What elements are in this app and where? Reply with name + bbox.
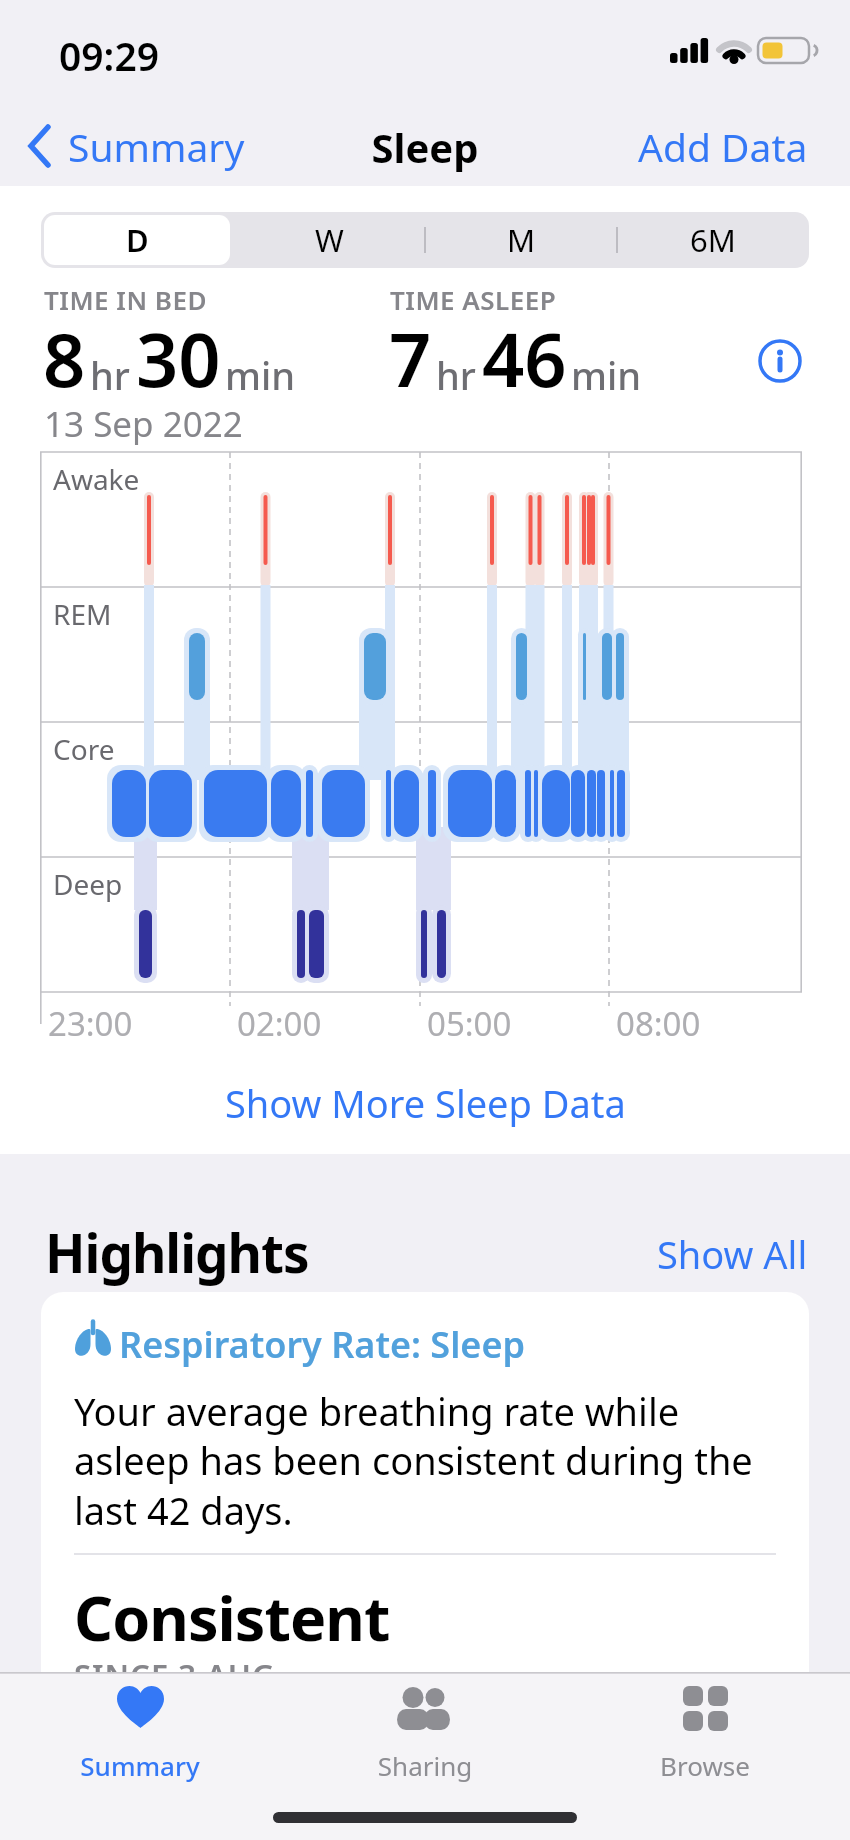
staticText: min <box>225 349 296 401</box>
staticText: 30 <box>136 308 221 409</box>
button[interactable]: Browse <box>625 1678 785 1788</box>
staticText: Sharing <box>345 1748 505 1783</box>
button[interactable]: 6M <box>617 212 809 268</box>
staticText: Summary <box>68 120 245 173</box>
button[interactable]: D <box>41 212 233 268</box>
staticText: hr <box>90 349 130 401</box>
staticText: Show More Sleep Data <box>225 1077 626 1129</box>
staticText: hr <box>436 349 476 401</box>
button[interactable]: M <box>425 212 617 268</box>
staticText: Deep <box>53 865 123 903</box>
staticText: 7 <box>389 308 432 409</box>
staticText: Summary <box>60 1748 220 1783</box>
staticText: 08:00 <box>616 1001 701 1046</box>
staticText: Browse <box>625 1748 785 1783</box>
staticText: REM <box>53 595 112 633</box>
button[interactable]: Add Data <box>628 118 808 174</box>
staticText: min <box>571 349 642 401</box>
staticText: TIME IN BED <box>44 282 208 317</box>
button[interactable] <box>758 339 802 383</box>
staticText: D <box>126 219 149 261</box>
staticText: W <box>315 219 344 261</box>
staticText: 02:00 <box>237 1001 322 1046</box>
staticText: 6M <box>690 219 736 261</box>
staticText: Add Data <box>638 120 808 173</box>
staticText: 8 <box>43 308 86 409</box>
button[interactable]: Summary <box>60 1678 220 1788</box>
staticText: Your average breathing rate while asleep… <box>74 1385 753 1536</box>
button[interactable]: Summary <box>24 118 245 174</box>
staticText: 13 Sep 2022 <box>44 400 243 448</box>
button[interactable]: Respiratory Rate: Sleep <box>41 1292 809 1840</box>
staticText: Awake <box>53 460 140 498</box>
button[interactable]: Show More Sleep Data <box>0 1075 850 1131</box>
staticText: Sleep <box>0 120 850 174</box>
staticText: Show All <box>657 1228 808 1280</box>
staticText: Highlights <box>45 1216 309 1288</box>
staticText: TIME ASLEEP <box>390 282 557 317</box>
staticText: M <box>507 219 536 261</box>
button[interactable]: Show All <box>657 1228 808 1280</box>
staticText: 23:00 <box>48 1001 133 1046</box>
staticText: 09:29 <box>59 29 159 82</box>
staticText: Respiratory Rate: Sleep <box>119 1320 526 1369</box>
staticText: Core <box>53 730 115 768</box>
staticText: 05:00 <box>427 1001 512 1046</box>
staticText: 46 <box>482 308 567 409</box>
button[interactable]: W <box>233 212 425 268</box>
button[interactable]: Sharing <box>345 1678 505 1788</box>
staticText: SINCE 3 AUG <box>74 1654 276 1696</box>
staticText: Consistent <box>74 1576 390 1659</box>
